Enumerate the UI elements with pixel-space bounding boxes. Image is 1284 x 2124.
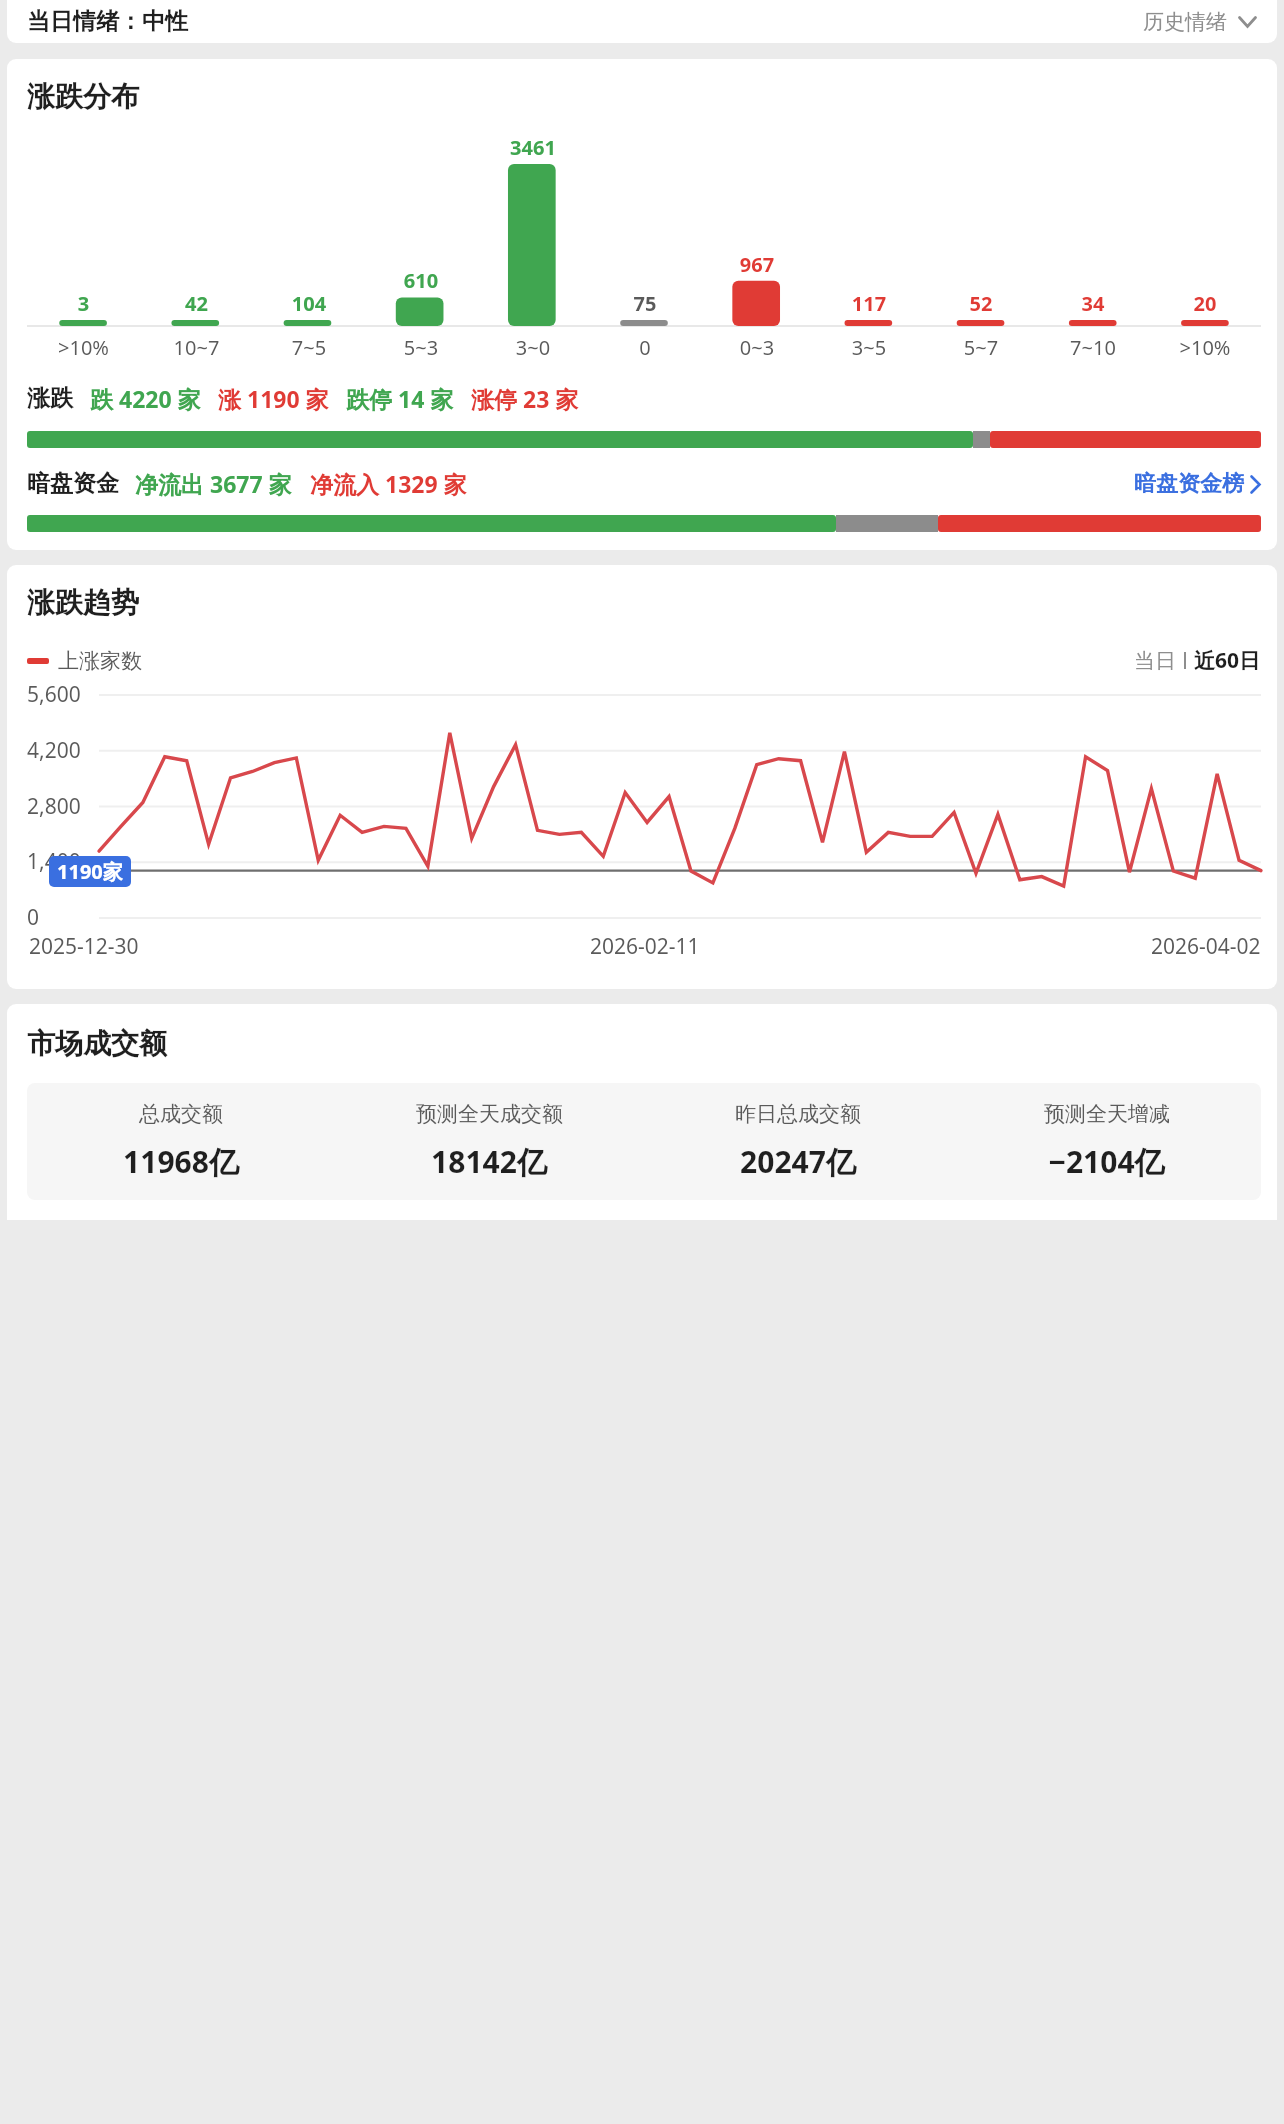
staticText: 预测全天增减	[1044, 1101, 1170, 1127]
staticText: 11968亿	[123, 1141, 239, 1182]
staticText: 历史情绪	[1143, 9, 1227, 35]
staticText: 7~10	[1037, 334, 1149, 361]
staticText: 104	[253, 290, 365, 317]
staticText: 20247亿	[740, 1141, 856, 1182]
staticText: 市场成交额	[27, 1026, 167, 1061]
staticText: 净流出 3677 家	[135, 468, 292, 499]
staticText: 967	[701, 251, 813, 278]
staticText: >10%	[27, 334, 140, 361]
staticText: 3461	[477, 134, 589, 161]
button[interactable]: 昨日总成交额	[643, 1101, 952, 1182]
staticText: −2104亿	[1048, 1141, 1165, 1182]
staticText: 暗盘资金	[27, 469, 119, 498]
staticText: 总成交额	[139, 1101, 223, 1127]
button[interactable]: 当日	[1134, 648, 1176, 674]
staticText: 涨停 23 家	[471, 383, 579, 414]
staticText: 0~3	[701, 334, 813, 361]
staticText: 预测全天成交额	[416, 1101, 563, 1127]
button[interactable]: 预测全天成交额	[335, 1101, 643, 1182]
staticText: 0	[27, 903, 40, 932]
staticText: 3~5	[813, 334, 925, 361]
staticText: 75	[589, 290, 701, 317]
staticText: 跌停 14 家	[346, 383, 454, 414]
staticText: 7~5	[253, 334, 365, 361]
button[interactable]: 近60日	[1194, 646, 1261, 675]
staticText: 3	[27, 290, 140, 317]
staticText: 1,400	[27, 847, 81, 876]
button[interactable]: 历史情绪	[1143, 9, 1257, 35]
staticText: 18142亿	[431, 1141, 547, 1182]
staticText: 昨日总成交额	[735, 1101, 861, 1127]
staticText: 5~7	[925, 334, 1037, 361]
staticText: >10%	[1149, 334, 1261, 361]
staticText: 上涨家数	[58, 648, 142, 674]
staticText: 34	[1037, 290, 1149, 317]
button[interactable]: 总成交额	[27, 1101, 335, 1182]
staticText: 净流入 1329 家	[310, 468, 467, 499]
staticText: 2,800	[27, 792, 81, 821]
staticText: 42	[140, 290, 253, 317]
staticText: 1190家	[57, 858, 123, 885]
staticText: 涨跌	[27, 384, 73, 413]
staticText: 610	[365, 267, 477, 294]
button[interactable]: 当日情绪：中性	[7, 0, 1277, 43]
staticText: 117	[813, 290, 925, 317]
staticText: 涨 1190 家	[218, 383, 329, 414]
staticText: 52	[925, 290, 1037, 317]
staticText: 5,600	[27, 680, 81, 709]
staticText: 涨跌趋势	[27, 585, 139, 620]
staticText: 20	[1149, 290, 1261, 317]
staticText: 2025-12-30	[29, 932, 139, 961]
staticText: 4,200	[27, 736, 81, 765]
staticText: 3~0	[477, 334, 589, 361]
staticText: 5~3	[365, 334, 477, 361]
staticText: 2026-02-11	[590, 932, 700, 961]
staticText: 2026-04-02	[1151, 932, 1261, 961]
button[interactable]: 预测全天增减	[952, 1101, 1261, 1182]
staticText: 10~7	[140, 334, 253, 361]
staticText: 涨跌分布	[27, 79, 139, 114]
staticText: 暗盘资金榜	[1134, 470, 1244, 498]
staticText: 跌 4220 家	[90, 383, 201, 414]
staticText: 0	[589, 334, 701, 361]
button[interactable]: 暗盘资金榜	[1134, 470, 1261, 498]
staticText: 当日情绪：中性	[27, 7, 188, 36]
